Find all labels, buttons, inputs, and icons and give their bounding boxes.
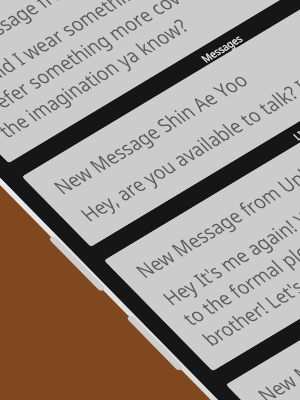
staticText: New Message from Unknown: [125, 79, 300, 341]
staticText: Hey again, it's been a while since we la…: [269, 188, 300, 400]
button[interactable]: New Message Shin Ae Yoo: [7, 0, 300, 345]
staticText: Hey, are you available to talk? It's imp…: [70, 0, 300, 313]
staticText: New Message from Gina: [0, 0, 125, 123]
staticText: Should I wear something casual or do you…: [0, 0, 300, 226]
staticText: New Message Shin Ae Yoo: [43, 16, 258, 251]
button[interactable]: New Message from Gina: [0, 0, 300, 261]
button[interactable]: New Message from Bus: [207, 73, 300, 400]
staticText: New Message from Bus: [247, 239, 300, 400]
staticText: LINE: [287, 116, 300, 147]
button[interactable]: New Message from Unknown: [81, 0, 300, 400]
staticText: Hey It's me again! Your life is going to…: [143, 71, 300, 400]
staticText: Messages: [195, 21, 247, 75]
